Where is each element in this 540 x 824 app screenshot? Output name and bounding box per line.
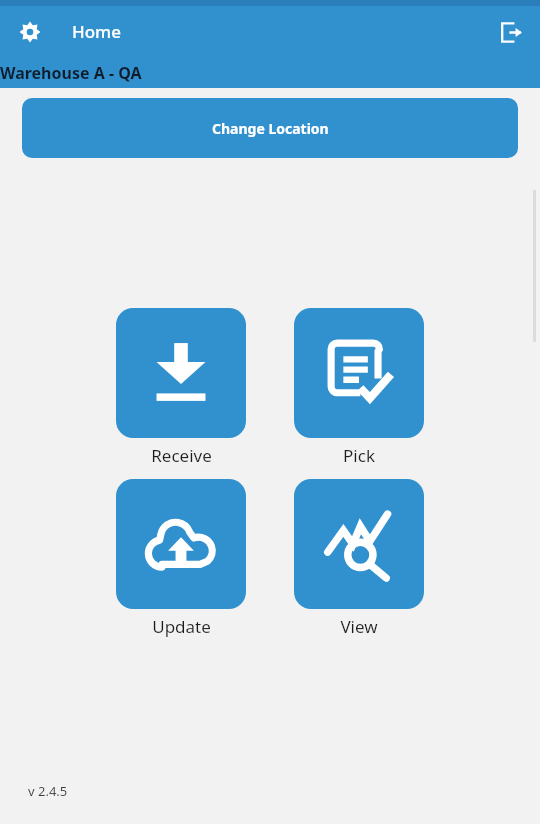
staticText: Home — [72, 20, 121, 43]
staticText: View — [340, 615, 378, 638]
staticText: v 2.4.5 — [28, 782, 68, 800]
button[interactable]: Change Location — [22, 98, 518, 158]
staticText: Update — [152, 615, 211, 638]
staticText: Receive — [151, 444, 212, 467]
button[interactable]: View — [294, 479, 424, 609]
button[interactable]: Settings — [10, 12, 50, 52]
button[interactable]: Pick — [294, 308, 424, 438]
button[interactable]: Update — [116, 479, 246, 609]
staticText: Change Location — [212, 119, 329, 138]
staticText: Pick — [343, 444, 375, 467]
button[interactable]: Logout — [490, 12, 530, 52]
staticText: Warehouse A - QA — [0, 62, 142, 84]
button[interactable]: Receive — [116, 308, 246, 438]
